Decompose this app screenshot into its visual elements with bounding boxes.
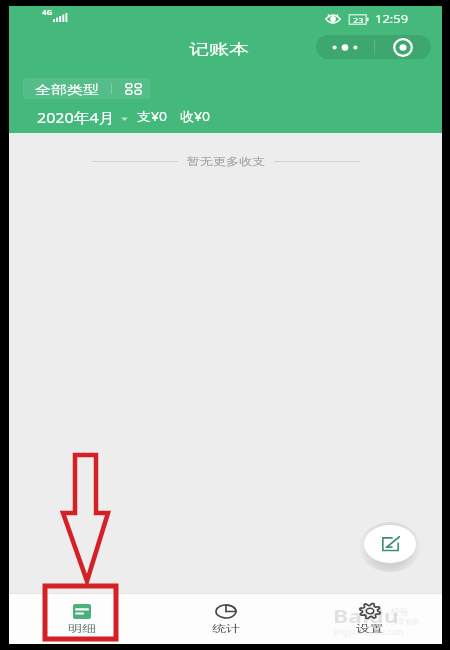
button[interactable]: 设置 (298, 594, 442, 644)
button[interactable]: 2020年4月 (37, 107, 131, 129)
button[interactable]: Add record (364, 525, 416, 563)
staticText: 12:59 (375, 12, 409, 26)
staticText: 记账本 (189, 40, 249, 58)
staticText: 全部类型 (35, 82, 99, 98)
staticText: 分享知识 (391, 617, 419, 626)
staticText: 统计 (212, 622, 240, 635)
button[interactable]: 明细 (9, 594, 154, 644)
staticText: 明细 (68, 622, 96, 635)
staticText: jingyan.baidu.com (334, 626, 404, 637)
staticText: 收¥0 (180, 108, 211, 125)
staticText: 经验 (391, 606, 409, 617)
button[interactable]: More options (316, 35, 374, 59)
staticText: 23 (353, 15, 364, 25)
button[interactable]: Close mini program (375, 35, 431, 59)
staticText: 2020年4月 (37, 108, 115, 128)
button[interactable]: 全部类型 (23, 78, 150, 99)
staticText: 4G (42, 8, 53, 17)
staticText: 设置 (356, 622, 384, 635)
staticText: 支¥0 (137, 108, 168, 125)
staticText: Baidu (333, 604, 399, 628)
staticText: 暂无更多收支 (187, 155, 265, 167)
button[interactable]: 统计 (154, 594, 298, 644)
